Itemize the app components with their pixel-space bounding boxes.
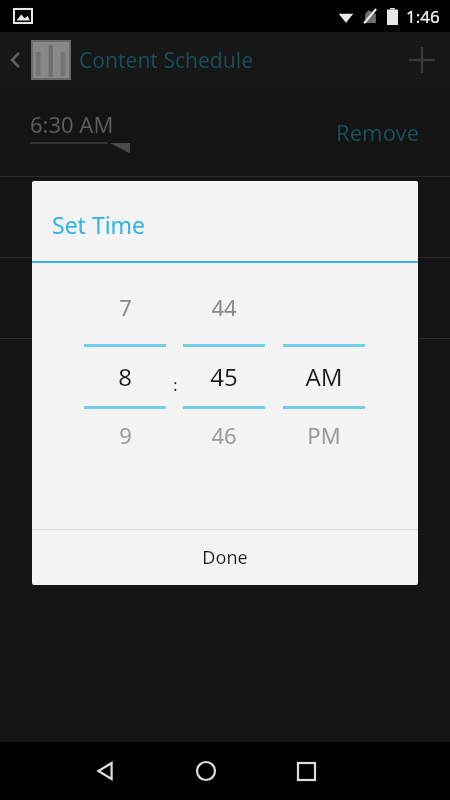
staticText: 9 xyxy=(119,420,132,450)
button[interactable]: 45 xyxy=(183,347,265,406)
button[interactable]: 9 xyxy=(84,413,166,457)
staticText: PM xyxy=(307,420,341,450)
button[interactable]: Recent apps xyxy=(280,745,332,797)
button[interactable]: 46 xyxy=(183,413,265,457)
button[interactable]: 6:30 AM xyxy=(30,109,130,155)
button[interactable]: Remove xyxy=(336,117,420,147)
staticText: 8 xyxy=(118,360,132,393)
staticText: Content Schedule xyxy=(79,46,253,75)
staticText: 46 xyxy=(211,420,237,450)
button[interactable]: PM xyxy=(283,413,365,457)
button[interactable]: AM xyxy=(283,347,365,406)
staticText: Done xyxy=(202,545,248,570)
staticText: : xyxy=(173,373,178,396)
button[interactable]: 8 xyxy=(84,347,166,406)
other: Back xyxy=(4,48,28,72)
button[interactable]: Done xyxy=(32,530,418,585)
staticText: Set Time xyxy=(52,209,146,240)
button[interactable]: Add xyxy=(394,32,450,88)
button[interactable]: Back xyxy=(80,745,132,797)
staticText: 45 xyxy=(210,360,238,393)
button[interactable]: 7 xyxy=(84,285,166,329)
button[interactable]: Back xyxy=(4,40,253,80)
button[interactable]: Home xyxy=(180,745,232,797)
staticText: 44 xyxy=(211,292,237,322)
staticText: 6:30 AM xyxy=(30,109,114,139)
staticText: 1:46 xyxy=(406,5,440,28)
staticText: 7 xyxy=(119,292,132,322)
button[interactable]: 44 xyxy=(183,285,265,329)
staticText: AM xyxy=(305,360,343,393)
